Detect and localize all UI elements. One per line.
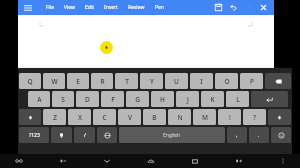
staticText: , [236, 132, 238, 139]
button[interactable]: T [115, 73, 138, 89]
button[interactable]: W [43, 73, 65, 89]
staticText: ! [229, 113, 231, 122]
button[interactable]: Emoji [271, 127, 291, 143]
button[interactable]: Hide keyboard [100, 154, 114, 168]
button[interactable]: , [227, 127, 247, 143]
button[interactable]: Review [123, 0, 150, 15]
staticText: T [125, 77, 129, 86]
button[interactable]: Pen cursor [100, 41, 113, 54]
button[interactable]: Q [19, 73, 41, 89]
button[interactable]: / [74, 127, 95, 143]
staticText: W [51, 77, 58, 86]
button[interactable]: M [193, 109, 216, 125]
staticText: J [187, 95, 189, 104]
button[interactable]: S [52, 91, 74, 107]
button[interactable]: Pen [150, 0, 169, 15]
button[interactable]: Close [256, 0, 271, 15]
button[interactable]: Shift [19, 109, 41, 125]
staticText: R [100, 77, 105, 86]
button[interactable]: A [28, 91, 50, 107]
staticText: H [160, 95, 165, 104]
staticText: N [177, 113, 183, 122]
button[interactable]: G [126, 91, 149, 107]
button[interactable]: Backspace [265, 73, 291, 89]
staticText: Y [150, 77, 154, 86]
staticText: P [250, 77, 254, 86]
button[interactable]: E [67, 73, 89, 89]
button[interactable]: Z [43, 109, 66, 125]
button[interactable]: View [59, 0, 80, 15]
staticText: G [135, 95, 140, 104]
button[interactable]: Shift [268, 109, 291, 125]
button[interactable]: Volume up [232, 154, 246, 168]
button[interactable]: C [93, 109, 116, 125]
button[interactable]: Insert [99, 0, 123, 15]
staticText: B [152, 113, 157, 122]
staticText: E [76, 77, 80, 86]
button[interactable]: . [249, 127, 269, 143]
button[interactable]: X [68, 109, 91, 125]
staticText: File [46, 4, 54, 11]
staticText: O [224, 77, 230, 86]
staticText: ?123 [29, 132, 40, 139]
staticText: Z [53, 113, 57, 122]
button[interactable]: Screenshot [12, 154, 26, 168]
button[interactable]: B [143, 109, 166, 125]
button[interactable]: Menu [21, 1, 35, 15]
button[interactable]: O [215, 73, 238, 89]
staticText: M [202, 113, 208, 122]
button[interactable]: Pen cursor [18, 15, 274, 68]
button[interactable]: Home [144, 154, 158, 168]
staticText: / [84, 132, 86, 139]
staticText: View [64, 4, 75, 11]
button[interactable]: Change language [97, 127, 117, 143]
button[interactable]: Volume down [56, 154, 70, 168]
staticText: . [258, 132, 260, 139]
button[interactable]: ? [243, 109, 266, 125]
button[interactable]: ! [218, 109, 241, 125]
button[interactable]: File [41, 0, 59, 15]
staticText: Insert [104, 4, 118, 11]
button[interactable]: L [226, 91, 249, 107]
button[interactable]: K [201, 91, 224, 107]
staticText: Q [27, 77, 33, 86]
staticText: K [210, 95, 215, 104]
staticText: I [200, 77, 203, 86]
button[interactable]: F [101, 91, 124, 107]
button[interactable]: N [168, 109, 191, 125]
staticText: D [85, 95, 90, 104]
button[interactable]: D [76, 91, 99, 107]
button[interactable]: Recent apps [188, 154, 202, 168]
button[interactable]: P [240, 73, 263, 89]
staticText: S [61, 95, 65, 104]
button[interactable]: Save [211, 0, 226, 15]
staticText: A [37, 95, 42, 104]
button[interactable]: More options [276, 154, 290, 168]
staticText: Review [128, 4, 145, 11]
button[interactable]: V [118, 109, 141, 125]
staticText: V [128, 113, 132, 122]
button[interactable]: J [176, 91, 199, 107]
staticText: L [236, 95, 240, 104]
staticText: ? [253, 113, 256, 122]
staticText: English [163, 132, 181, 139]
button[interactable]: Edit [80, 0, 99, 15]
staticText: U [174, 77, 179, 86]
button[interactable]: H [151, 91, 174, 107]
button[interactable]: Undo [226, 0, 241, 15]
button[interactable]: Symbols [19, 127, 49, 143]
button[interactable]: Y [140, 73, 163, 89]
staticText: Pen [155, 4, 164, 11]
button[interactable]: U [165, 73, 188, 89]
button[interactable]: R [91, 73, 113, 89]
staticText: C [102, 113, 107, 122]
button[interactable]: I [190, 73, 213, 89]
button[interactable]: Voice input [51, 127, 72, 143]
button[interactable]: Enter [251, 91, 288, 107]
staticText: X [78, 113, 82, 122]
button[interactable]: Space [119, 127, 225, 143]
staticText: Edit [85, 4, 94, 11]
staticText: F [111, 95, 115, 104]
